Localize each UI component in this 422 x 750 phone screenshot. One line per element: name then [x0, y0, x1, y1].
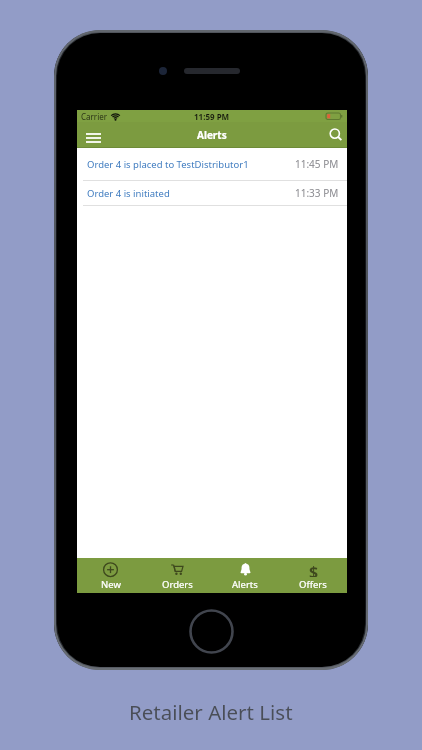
- button[interactable]: [327, 126, 345, 144]
- staticText: Retailer Alert List: [129, 698, 293, 726]
- staticText: 11:59 PM: [194, 111, 230, 122]
- staticText: Alerts: [197, 128, 227, 142]
- staticText: $: [309, 561, 319, 577]
- staticText: 11:45 PM: [295, 157, 339, 171]
- staticText: Offers: [299, 578, 327, 591]
- button[interactable]: Order 4 is initiated: [77, 181, 347, 205]
- button[interactable]: Alerts: [211, 558, 279, 593]
- button[interactable]: [86, 133, 101, 143]
- staticText: Order 4 is initiated: [87, 187, 170, 200]
- staticText: Carrier: [81, 111, 108, 122]
- staticText: New: [101, 578, 121, 591]
- staticText: Orders: [162, 578, 193, 591]
- staticText: Alerts: [232, 578, 258, 591]
- staticText: Order 4 is placed to TestDistributor1: [87, 158, 249, 171]
- staticText: 11:33 PM: [295, 186, 339, 200]
- button[interactable]: Order 4 is placed to TestDistributor1: [77, 148, 347, 180]
- button[interactable]: New: [77, 558, 144, 593]
- button[interactable]: $: [279, 558, 347, 593]
- button[interactable]: Orders: [144, 558, 211, 593]
